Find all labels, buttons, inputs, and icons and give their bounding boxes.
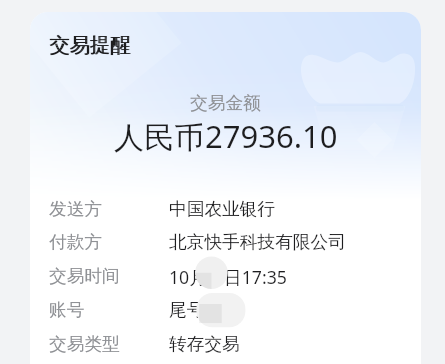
staticText: 交易类型 [49,333,120,355]
staticText: 日17:35 [224,265,287,289]
staticText: 27936.10 [205,115,338,157]
staticText: 发送方 [49,198,103,220]
staticText: 中国农业银行 [169,198,276,220]
staticText: 转存交易 [169,333,240,355]
staticText: 付款方 [49,231,103,253]
staticText: 人民币 [114,119,204,157]
staticText: 北京快手科技有限公司 [169,231,346,253]
staticText: 交易提醒 [50,32,132,58]
staticText: 10月 [169,265,207,289]
staticText: 尾号 [169,299,205,321]
staticText: 交易提醒 [49,32,131,58]
button[interactable]: 交易提醒 [30,12,421,364]
staticText: 交易金额 [30,92,421,114]
staticText: 交易时间 [49,265,120,287]
staticText: 账号 [49,299,85,321]
